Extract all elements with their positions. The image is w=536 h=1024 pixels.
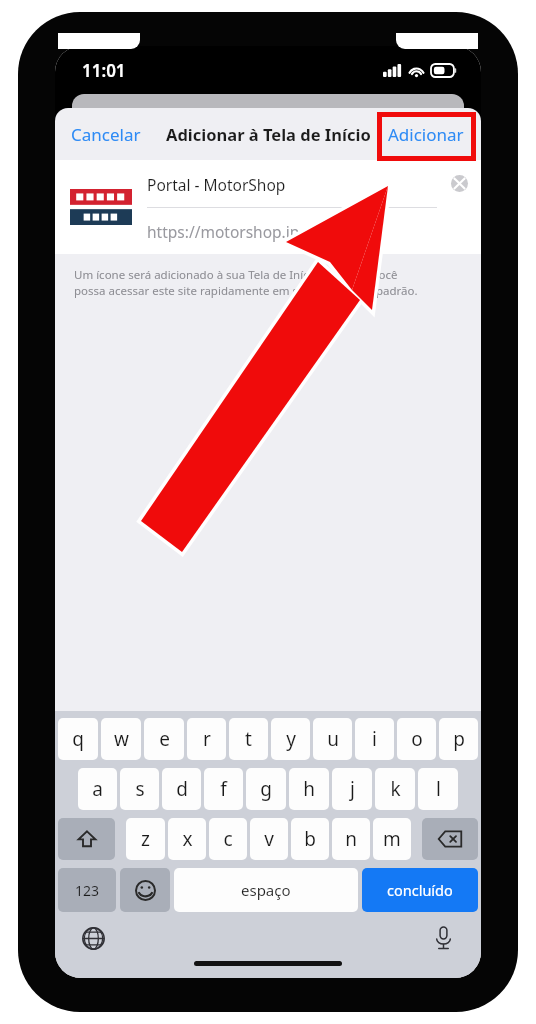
staticText: Adicionar à Tela de Início	[166, 123, 371, 145]
button[interactable]: x	[168, 818, 206, 860]
staticText: b	[304, 826, 316, 852]
staticText: l	[436, 776, 441, 802]
staticText: u	[327, 726, 339, 752]
staticText: p	[453, 726, 465, 752]
button[interactable]: b	[291, 818, 329, 860]
button[interactable]: v	[250, 818, 288, 860]
button[interactable]: u	[313, 718, 352, 760]
staticText: k	[390, 776, 401, 802]
staticText: t	[245, 726, 252, 752]
button[interactable]: c	[209, 818, 247, 860]
staticText: n	[345, 826, 357, 852]
staticText: y	[286, 726, 296, 752]
staticText: g	[260, 776, 272, 802]
button[interactable]: t	[229, 718, 268, 760]
button[interactable]: g	[246, 768, 286, 810]
button[interactable]: s	[120, 768, 159, 810]
button[interactable]: Limpar texto	[437, 160, 481, 254]
button[interactable]: r	[187, 718, 226, 760]
staticText: c	[223, 826, 233, 852]
staticText: possa acessar este site rapidamente em s…	[74, 283, 418, 299]
button[interactable]: Emoji	[120, 868, 170, 912]
button[interactable]: e	[144, 718, 184, 760]
button[interactable]: y	[271, 718, 310, 760]
staticText: Adicionar	[388, 123, 464, 146]
button[interactable]: h	[289, 768, 329, 810]
staticText: w	[114, 726, 129, 752]
staticText: a	[92, 776, 103, 802]
staticText: concluído	[387, 880, 453, 900]
staticText: e	[159, 726, 170, 752]
button[interactable]: Adicionar	[371, 115, 481, 154]
staticText: espaço	[241, 880, 291, 900]
button[interactable]: Shift	[58, 818, 115, 860]
staticText: x	[182, 826, 193, 852]
staticText: r	[203, 726, 211, 752]
staticText: v	[264, 826, 274, 852]
button[interactable]: 123	[58, 868, 116, 912]
staticText: i	[372, 726, 377, 752]
staticText: q	[72, 726, 84, 752]
staticText: Portal - MotorShop	[147, 174, 286, 195]
button[interactable]: i	[355, 718, 394, 760]
button[interactable]: p	[439, 718, 478, 760]
staticText: j	[350, 776, 355, 802]
button[interactable]: n	[332, 818, 370, 860]
button[interactable]: j	[332, 768, 372, 810]
button[interactable]: Ditado	[427, 922, 459, 954]
button[interactable]: w	[101, 718, 141, 760]
button[interactable]: l	[418, 768, 458, 810]
button[interactable]: d	[162, 768, 201, 810]
staticText: h	[303, 776, 315, 802]
staticText: 11:01	[82, 59, 126, 82]
button[interactable]: a	[78, 768, 117, 810]
staticText: f	[220, 776, 227, 802]
button[interactable]: z	[126, 818, 165, 860]
button[interactable]: espaço	[174, 868, 358, 912]
staticText: 123	[75, 881, 100, 900]
button[interactable]: Apagar	[422, 818, 478, 860]
staticText: z	[141, 826, 150, 852]
button[interactable]: concluído	[362, 868, 478, 912]
staticText: Cancelar	[71, 123, 141, 146]
staticText: s	[135, 776, 145, 802]
button[interactable]: Cancelar	[55, 115, 157, 154]
staticText: d	[176, 776, 188, 802]
button[interactable]: k	[375, 768, 415, 810]
button[interactable]: f	[204, 768, 243, 810]
staticText: m	[383, 826, 401, 852]
button[interactable]: m	[373, 818, 411, 860]
staticText: https://motorshop.jp	[147, 221, 300, 242]
staticText: Um ícone será adicionado à sua Tela de I…	[74, 267, 398, 283]
button[interactable]: q	[58, 718, 98, 760]
staticText: o	[411, 726, 423, 752]
button[interactable]: Mudar idioma	[77, 922, 109, 954]
button[interactable]: o	[397, 718, 436, 760]
